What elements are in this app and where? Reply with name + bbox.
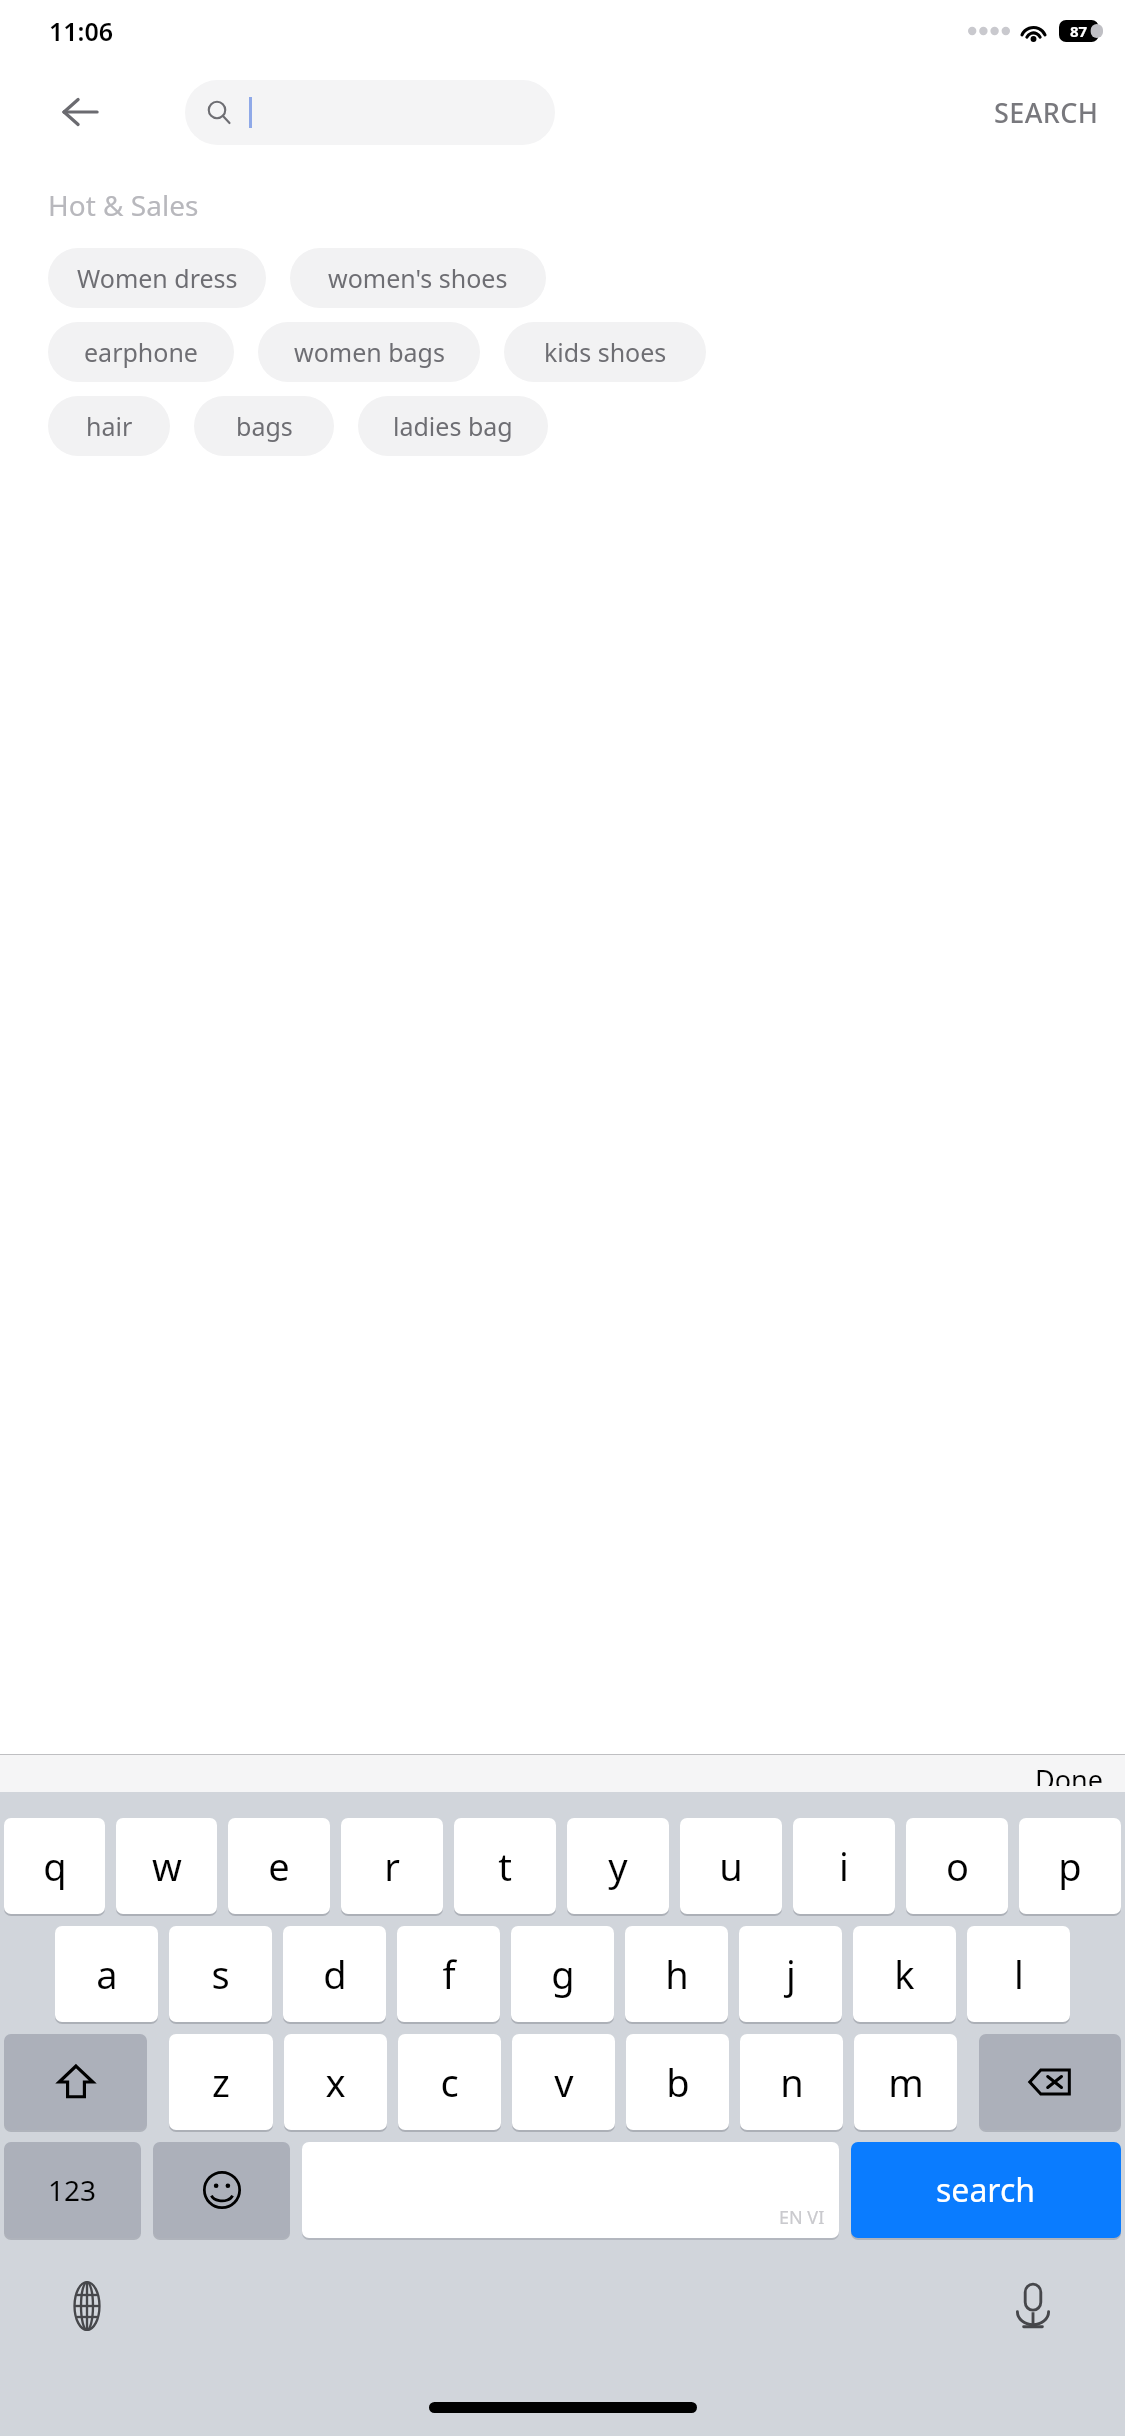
button[interactable]: [185, 80, 555, 145]
staticText: women bags: [294, 335, 445, 369]
button[interactable]: d: [283, 1926, 386, 2022]
button[interactable]: s: [169, 1926, 272, 2022]
staticText: earphone: [84, 335, 198, 369]
staticText: f: [442, 1948, 456, 2000]
button[interactable]: n: [740, 2034, 843, 2130]
staticText: m: [888, 2056, 924, 2108]
staticText: o: [946, 1840, 969, 1892]
button[interactable]: w: [116, 1818, 217, 1914]
button[interactable]: Women dress: [48, 248, 266, 308]
button[interactable]: q: [4, 1818, 105, 1914]
button[interactable]: women's shoes: [290, 248, 546, 308]
staticText: z: [212, 2056, 230, 2108]
staticText: r: [384, 1840, 400, 1892]
button[interactable]: women bags: [258, 322, 480, 382]
staticText: kids shoes: [544, 335, 667, 369]
staticText: bags: [236, 409, 293, 443]
button[interactable]: ladies bag: [358, 396, 548, 456]
button[interactable]: Backspace: [979, 2034, 1121, 2130]
button[interactable]: u: [680, 1818, 782, 1914]
button[interactable]: hair: [48, 396, 170, 456]
staticText: search: [936, 2168, 1036, 2212]
button[interactable]: b: [626, 2034, 729, 2130]
staticText: w: [152, 1840, 182, 1892]
button[interactable]: bags: [194, 396, 334, 456]
button[interactable]: f: [397, 1926, 500, 2022]
button[interactable]: r: [341, 1818, 443, 1914]
button[interactable]: t: [454, 1818, 556, 1914]
staticText: v: [554, 2056, 574, 2108]
button[interactable]: h: [625, 1926, 728, 2022]
staticText: b: [666, 2056, 690, 2108]
button[interactable]: v: [512, 2034, 615, 2130]
button[interactable]: 123: [4, 2142, 141, 2238]
staticText: u: [719, 1840, 743, 1892]
button[interactable]: kids shoes: [504, 322, 706, 382]
button[interactable]: Dictation: [1001, 2274, 1065, 2338]
button[interactable]: g: [511, 1926, 614, 2022]
staticText: 11:06: [49, 14, 114, 48]
staticText: l: [1014, 1948, 1024, 2000]
button[interactable]: o: [906, 1818, 1008, 1914]
button[interactable]: p: [1019, 1818, 1121, 1914]
staticText: g: [551, 1948, 575, 2000]
button[interactable]: m: [854, 2034, 957, 2130]
button[interactable]: x: [284, 2034, 387, 2130]
staticText: s: [211, 1948, 230, 2000]
staticText: j: [786, 1948, 796, 2000]
staticText: k: [894, 1948, 915, 2000]
staticText: ladies bag: [393, 409, 513, 443]
staticText: n: [780, 2056, 804, 2108]
button[interactable]: z: [169, 2034, 273, 2130]
staticText: c: [440, 2056, 459, 2108]
button[interactable]: l: [967, 1926, 1070, 2022]
button[interactable]: Done: [1013, 1755, 1125, 1792]
staticText: Women dress: [77, 261, 238, 295]
staticText: x: [325, 2056, 346, 2108]
staticText: Done: [1035, 1761, 1103, 1786]
button[interactable]: SEARCH: [978, 82, 1115, 143]
staticText: d: [323, 1948, 347, 2000]
staticText: 87: [1070, 21, 1088, 41]
button[interactable]: Shift: [4, 2034, 147, 2130]
staticText: t: [498, 1840, 512, 1892]
button[interactable]: j: [739, 1926, 842, 2022]
button[interactable]: Change keyboard language: [55, 2274, 119, 2338]
button[interactable]: search: [851, 2142, 1121, 2238]
staticText: y: [608, 1840, 628, 1892]
staticText: EN VI: [779, 2205, 825, 2230]
button[interactable]: k: [853, 1926, 956, 2022]
staticText: a: [96, 1948, 118, 2000]
button[interactable]: Back: [55, 87, 105, 137]
button[interactable]: Emoji: [153, 2142, 290, 2238]
staticText: e: [268, 1840, 290, 1892]
button[interactable]: y: [567, 1818, 669, 1914]
staticText: h: [665, 1948, 689, 2000]
button[interactable]: earphone: [48, 322, 234, 382]
button[interactable]: e: [228, 1818, 330, 1914]
staticText: SEARCH: [994, 94, 1099, 131]
staticText: i: [839, 1840, 849, 1892]
staticText: Hot & Sales: [48, 186, 199, 224]
staticText: hair: [86, 409, 133, 443]
button[interactable]: c: [398, 2034, 501, 2130]
staticText: 123: [48, 2171, 97, 2209]
button[interactable]: Space: [302, 2142, 839, 2238]
staticText: p: [1058, 1840, 1082, 1892]
staticText: q: [43, 1840, 67, 1892]
button[interactable]: a: [55, 1926, 158, 2022]
button[interactable]: i: [793, 1818, 895, 1914]
staticText: women's shoes: [328, 261, 508, 295]
